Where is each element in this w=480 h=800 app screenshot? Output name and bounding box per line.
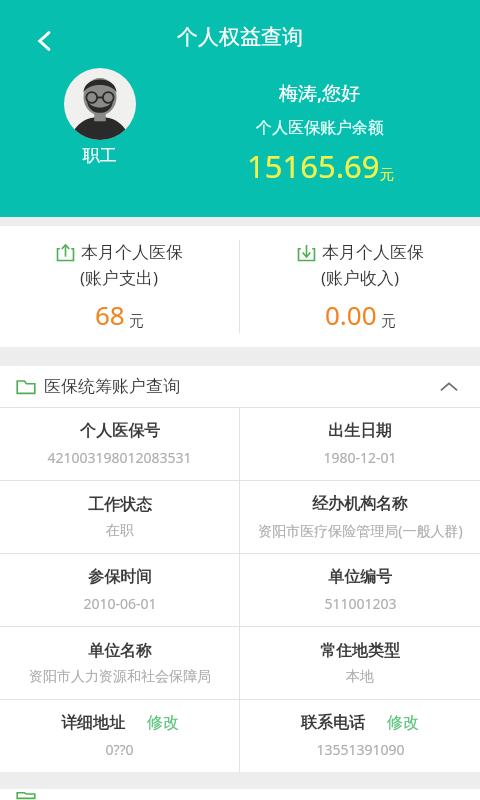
staticText: 修改 (147, 713, 179, 733)
staticText: 421003198012083531 (47, 448, 192, 467)
staticText: 资阳市医疗保险管理局(一般人群) (258, 521, 463, 540)
button[interactable]: 常住地类型 (240, 627, 480, 699)
button[interactable]: 修改 (147, 713, 179, 733)
button[interactable]: 单位名称 (0, 627, 239, 699)
button[interactable] (0, 789, 480, 800)
button[interactable]: 修改 (387, 713, 419, 733)
staticText: 工作状态 (88, 495, 152, 515)
staticText: 医保统筹账户查询 (44, 376, 180, 397)
staticText: 本地 (346, 668, 374, 686)
staticText: 0.00 (325, 297, 377, 332)
staticText: 详细地址 (61, 713, 125, 733)
staticText: 本月个人医保 (81, 242, 183, 263)
staticText: 本月个人医保 (322, 242, 424, 263)
staticText: 511001203 (324, 594, 397, 613)
button[interactable]: 本月个人医保 (0, 226, 239, 347)
button[interactable]: Back (22, 18, 68, 64)
button[interactable]: 出生日期 (240, 408, 480, 480)
staticText: 元 (125, 310, 144, 330)
staticText: 参保时间 (88, 567, 152, 587)
staticText: 单位编号 (328, 567, 392, 587)
staticText: (账户支出) (80, 266, 159, 289)
staticText: 修改 (387, 713, 419, 733)
button[interactable]: 参保时间 (0, 554, 239, 626)
button[interactable]: 详细地址 (0, 700, 239, 772)
staticText: 元 (377, 310, 396, 330)
staticText: 联系电话 (301, 713, 365, 733)
staticText: 出生日期 (328, 421, 392, 441)
staticText: 资阳市人力资源和社会保障局 (29, 668, 211, 686)
staticText: (账户收入) (321, 266, 400, 289)
staticText: 15165.69 (247, 145, 380, 187)
staticText: 元 (380, 166, 394, 184)
button[interactable]: Avatar (64, 68, 136, 140)
staticText: 2010-06-01 (83, 594, 157, 613)
staticText: 个人权益查询 (177, 24, 303, 50)
staticText: 常住地类型 (320, 641, 400, 661)
staticText: 梅涛,您好 (279, 80, 361, 106)
button[interactable]: 联系电话 (240, 700, 480, 772)
staticText: 13551391090 (316, 740, 405, 759)
staticText: 1980-12-01 (323, 448, 397, 467)
button[interactable]: 经办机构名称 (240, 481, 480, 553)
button[interactable]: 本月个人医保 (240, 226, 480, 347)
button[interactable]: 医保统筹账户查询 (0, 366, 480, 407)
staticText: 0??0 (105, 740, 134, 759)
button[interactable]: 工作状态 (0, 481, 239, 553)
staticText: 单位名称 (88, 641, 152, 661)
staticText: 职工 (83, 145, 117, 166)
staticText: 68 (95, 297, 125, 332)
button[interactable]: 单位编号 (240, 554, 480, 626)
staticText: 在职 (106, 522, 134, 540)
staticText: 个人医保账户余额 (256, 118, 384, 138)
staticText: 个人医保号 (80, 421, 160, 441)
button[interactable]: 个人医保号 (0, 408, 239, 480)
staticText: 经办机构名称 (312, 494, 408, 514)
other: Collapse (434, 372, 464, 402)
